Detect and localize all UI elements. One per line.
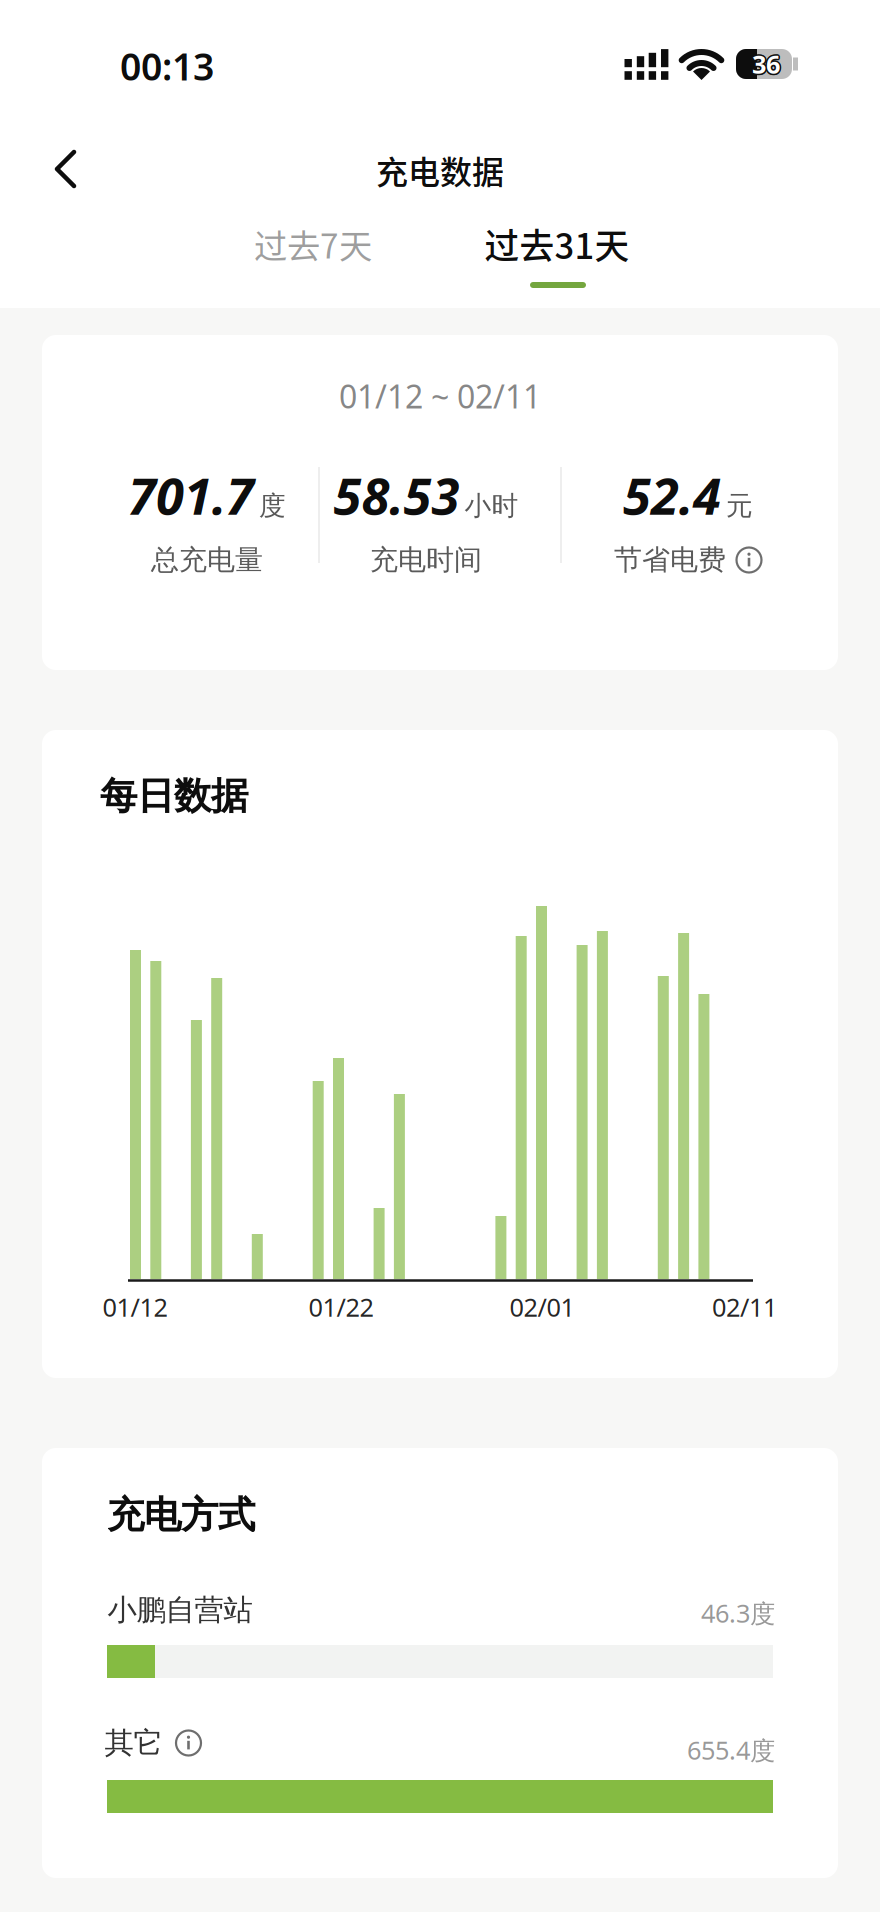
staticText: 36 <box>753 48 781 82</box>
staticText: 52.4 <box>623 461 721 529</box>
staticText: 36 <box>752 49 780 82</box>
staticText: 36 <box>752 47 780 81</box>
staticText: 01/22 <box>308 1290 373 1324</box>
staticText: 度 <box>259 489 286 522</box>
staticText: 元 <box>726 489 753 522</box>
button[interactable]: 过去31天 <box>452 209 662 279</box>
staticText: 充电数据 <box>376 147 504 193</box>
staticText: 655.4度 <box>687 1733 775 1767</box>
button[interactable] <box>175 1730 201 1756</box>
staticText: 36 <box>753 47 781 81</box>
staticText: 36 <box>753 46 781 80</box>
staticText: 02/01 <box>509 1290 574 1324</box>
staticText: 充电时间 <box>370 543 482 577</box>
staticText: 01/12 <box>102 1290 167 1324</box>
staticText: 其它 <box>104 1725 162 1761</box>
staticText: 01/12 ~ 02/11 <box>339 375 541 417</box>
button[interactable] <box>33 137 97 201</box>
staticText: 701.7 <box>128 461 254 529</box>
staticText: 节省电费 <box>614 543 726 577</box>
staticText: 00:13 <box>120 41 214 91</box>
staticText: 小时 <box>464 489 518 522</box>
staticText: 02/11 <box>712 1290 777 1324</box>
staticText: 36 <box>751 48 779 82</box>
staticText: 36 <box>750 47 778 81</box>
staticText: 46.3度 <box>701 1596 775 1630</box>
button[interactable]: 过去7天 <box>218 209 408 279</box>
button[interactable] <box>736 547 762 573</box>
staticText: 过去7天 <box>254 220 372 268</box>
staticText: 充电方式 <box>107 1492 255 1538</box>
staticText: 58.53 <box>333 461 459 529</box>
staticText: 36 <box>752 46 780 79</box>
staticText: 总充电量 <box>151 543 263 577</box>
staticText: 过去31天 <box>484 219 629 269</box>
staticText: 每日数据 <box>100 773 248 819</box>
staticText: 小鹏自营站 <box>107 1592 252 1628</box>
staticText: 36 <box>751 46 779 80</box>
